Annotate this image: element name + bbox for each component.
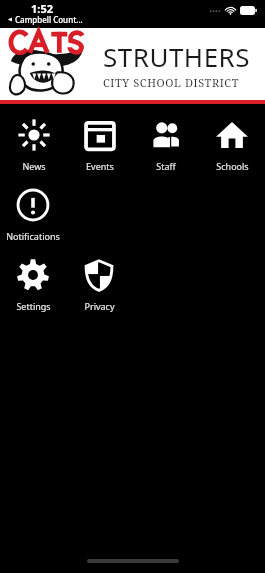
staticText: 1:52 xyxy=(31,1,53,16)
other: Events xyxy=(83,118,117,152)
staticText: Notifications xyxy=(6,230,60,242)
other: News xyxy=(17,118,51,152)
button[interactable]: News xyxy=(0,114,67,176)
other: Staff xyxy=(149,118,183,152)
button[interactable]: Privacy xyxy=(66,254,132,316)
other: Notifications xyxy=(16,188,50,222)
staticText: Events xyxy=(86,160,114,172)
staticText: Privacy xyxy=(84,300,115,312)
button[interactable]: Settings xyxy=(0,254,66,316)
button[interactable]: Staff xyxy=(133,114,199,176)
staticText: STRUTHERS xyxy=(103,39,251,74)
other: Settings xyxy=(16,258,50,292)
staticText: Campbell Count... xyxy=(15,14,83,25)
staticText: Staff xyxy=(156,160,176,172)
button[interactable]: Events xyxy=(67,114,133,176)
button[interactable]: Notifications xyxy=(0,184,66,246)
staticText: News xyxy=(22,160,46,172)
other: Schools xyxy=(215,118,249,152)
staticText: CITY SCHOOL DISTRICT xyxy=(103,75,240,90)
other: Privacy xyxy=(82,258,116,292)
staticText: Settings xyxy=(16,300,51,312)
button[interactable]: Schools xyxy=(199,114,265,176)
staticText: Schools xyxy=(216,160,249,172)
